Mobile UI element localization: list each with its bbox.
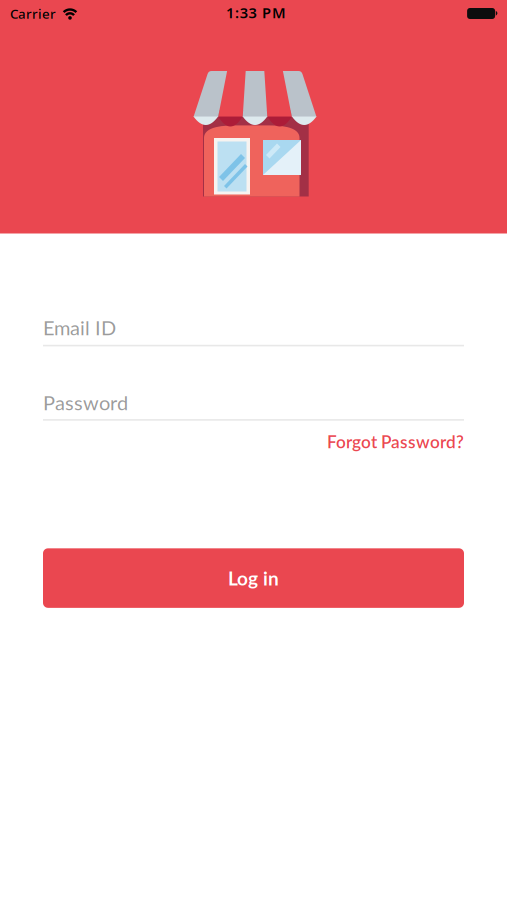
staticText: Carrier: [10, 5, 56, 22]
staticText: Log in: [228, 567, 279, 590]
button[interactable]: Password text field: [43, 390, 464, 421]
staticText: 1:33 PM: [226, 3, 286, 22]
staticText: Password: [43, 390, 128, 414]
button[interactable]: Email ID text field: [43, 315, 464, 346]
staticText: Email ID: [43, 315, 116, 339]
staticText: Forgot Password?: [327, 431, 464, 452]
button[interactable]: Forgot Password?: [327, 431, 464, 452]
button[interactable]: Log in: [43, 548, 464, 608]
